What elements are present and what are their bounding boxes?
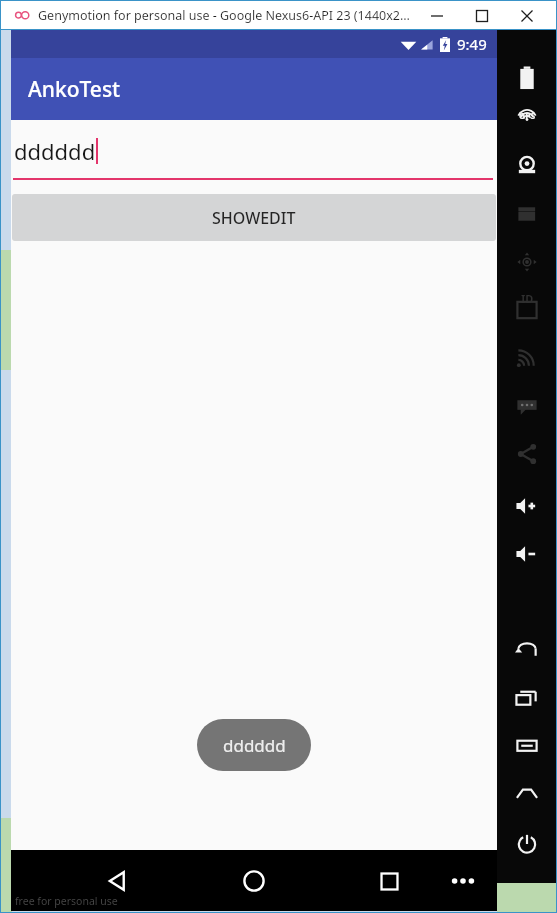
button[interactable]: Network: [503, 334, 551, 382]
staticText: free for personal use: [15, 894, 118, 908]
button[interactable]: GPS: [503, 98, 551, 146]
button[interactable]: Minimize: [414, 1, 459, 30]
button[interactable]: Recent apps: [503, 674, 551, 722]
button[interactable]: Close: [504, 1, 549, 30]
button[interactable]: SHOWEDIT: [12, 194, 496, 241]
staticText: 9:49: [457, 34, 487, 54]
button[interactable]: Back: [91, 855, 143, 907]
button[interactable]: Power: [503, 820, 551, 868]
button[interactable]: Home: [228, 855, 280, 907]
button[interactable]: Volume up: [503, 482, 551, 530]
button[interactable]: SMS: [503, 382, 551, 430]
button[interactable]: dddddd: [11, 122, 497, 180]
button[interactable]: Camera: [503, 142, 551, 190]
staticText: AnkoTest: [28, 75, 121, 104]
button[interactable]: Back: [503, 626, 551, 674]
staticText: dddddd: [14, 136, 96, 166]
button[interactable]: Maximize: [459, 1, 504, 30]
button[interactable]: Movement: [503, 238, 551, 286]
button[interactable]: More options: [441, 859, 485, 903]
staticText: Genymotion for personal use - Google Nex…: [38, 7, 410, 24]
button[interactable]: Volume down: [503, 530, 551, 578]
staticText: GPS: [519, 110, 536, 122]
button[interactable]: Share: [503, 430, 551, 478]
staticText: SHOWEDIT: [212, 207, 296, 229]
button[interactable]: Video recorder: [503, 190, 551, 238]
button[interactable]: Home: [503, 770, 551, 818]
button[interactable]: Recent apps: [363, 855, 415, 907]
staticText: dddddd: [223, 734, 286, 757]
button[interactable]: Menu: [503, 722, 551, 770]
button[interactable]: Identifiers: [503, 286, 551, 334]
button[interactable]: Battery: [503, 54, 551, 102]
staticText: ID: [521, 291, 534, 306]
